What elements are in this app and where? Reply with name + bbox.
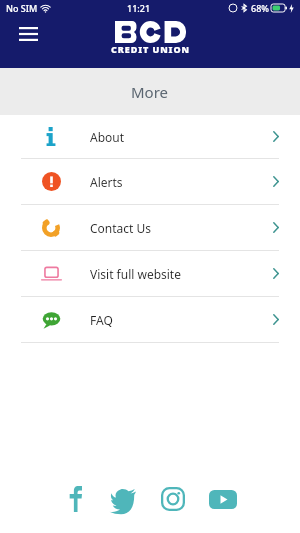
button[interactable]: Instagram [148,482,198,516]
staticText: 11:21 [127,2,151,14]
button[interactable]: About [0,115,300,158]
staticText: More [131,82,169,102]
staticText: No SIM [6,2,38,14]
button[interactable]: FAQ [0,297,300,342]
staticText: FAQ [90,312,113,328]
staticText: Contact Us [90,220,152,236]
button[interactable]: Visit full website [0,251,300,296]
staticText: Alerts [90,174,123,190]
staticText: 68% [251,2,269,14]
button[interactable]: Facebook [52,482,98,516]
button[interactable]: Alerts [0,159,300,204]
button[interactable]: Twitter [98,482,148,516]
button[interactable]: Contact Us [0,205,300,250]
staticText: About [90,129,125,145]
staticText: CREDIT UNION [111,43,190,54]
button[interactable]: YouTube [198,482,248,516]
button[interactable]: Menu [10,16,46,52]
staticText: Visit full website [90,266,181,282]
